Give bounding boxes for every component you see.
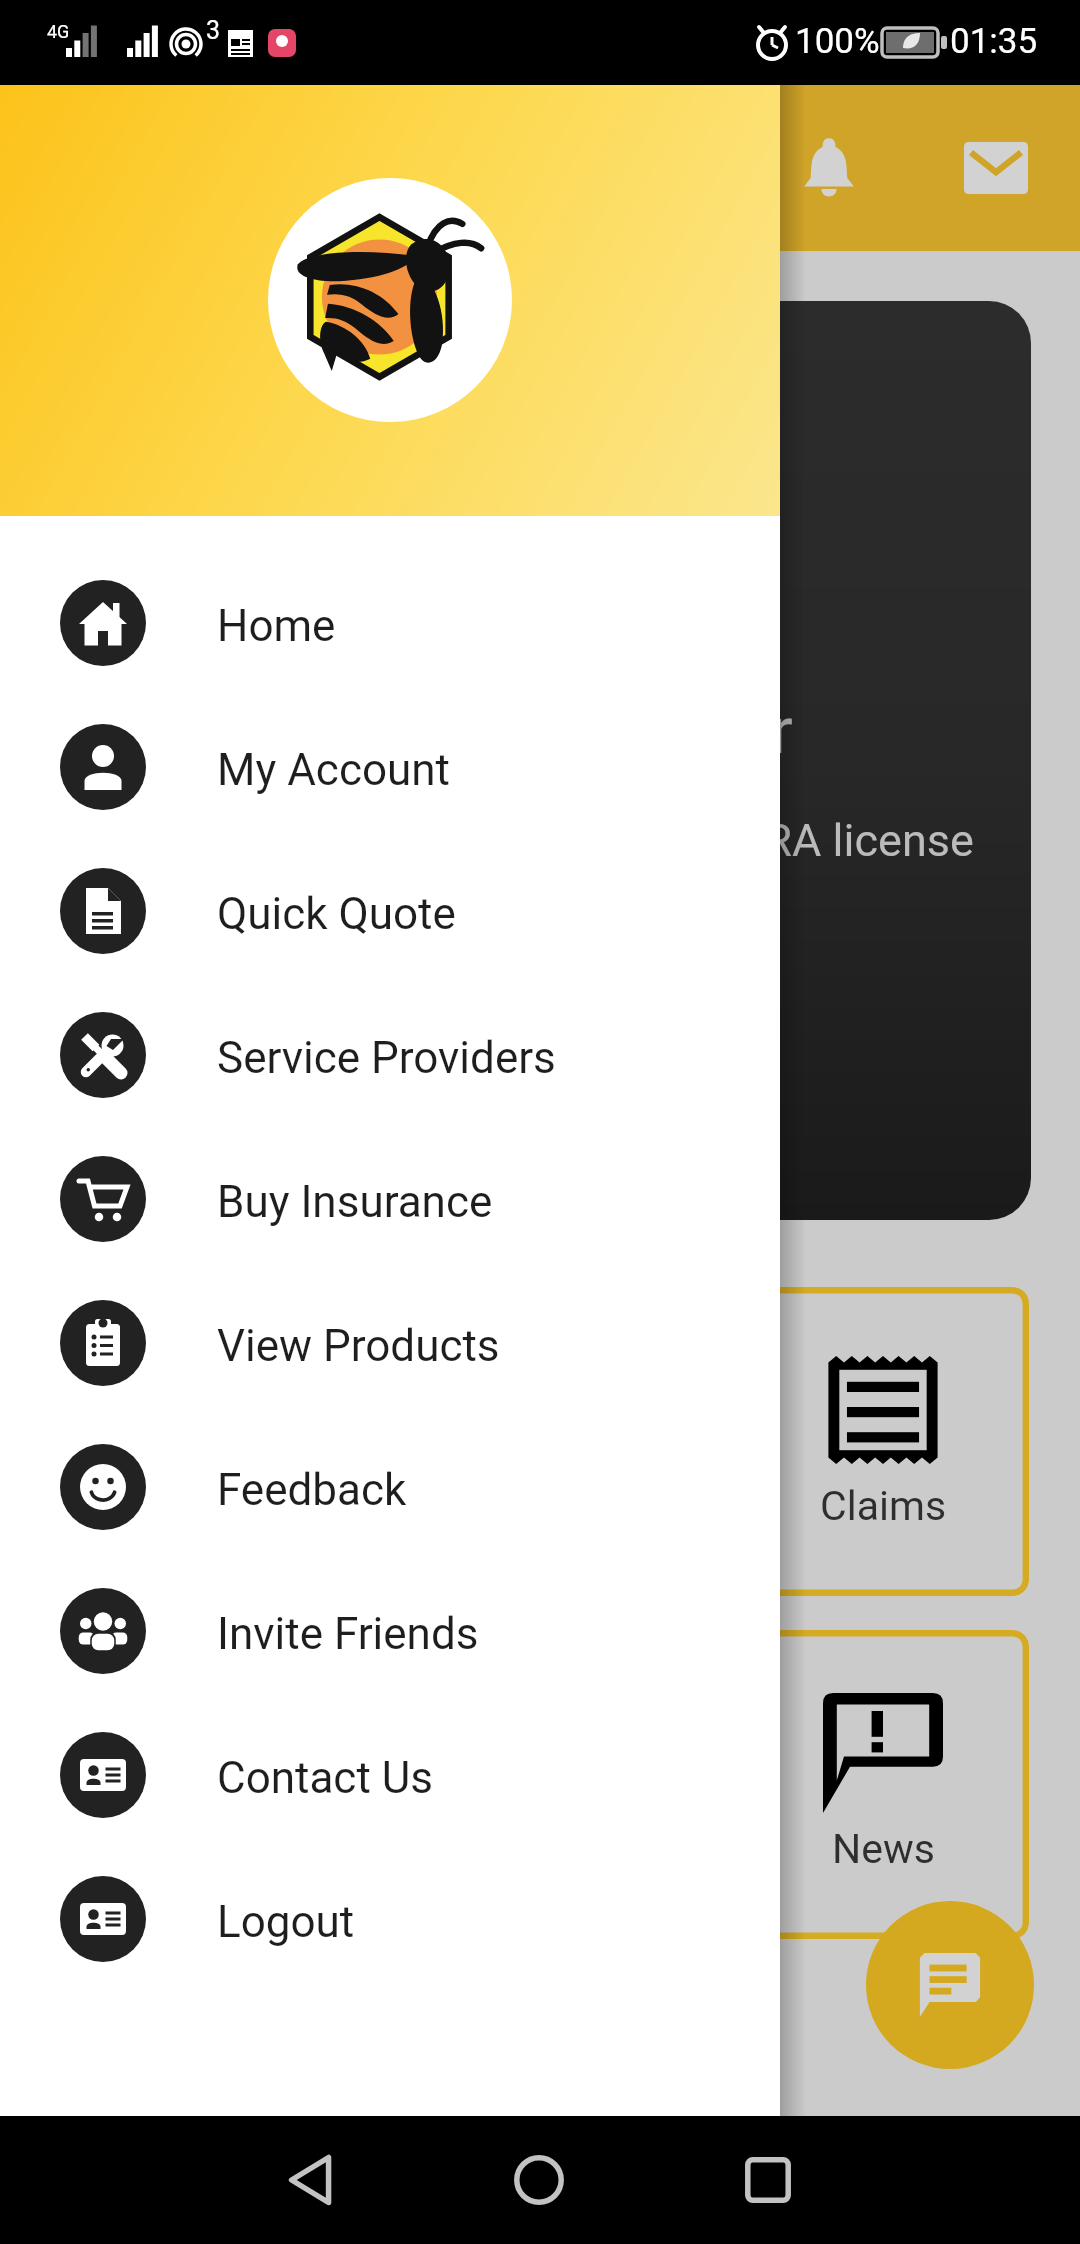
staticText: Logout: [217, 1896, 355, 1948]
staticText: News: [832, 1825, 935, 1873]
button[interactable]: Service Providers: [0, 983, 780, 1127]
button[interactable]: View Products: [0, 1271, 780, 1415]
staticText: View Products: [217, 1320, 500, 1372]
button[interactable]: My Account: [0, 695, 780, 839]
staticText: My Account: [217, 744, 450, 796]
staticText: Invite Friends: [217, 1608, 479, 1660]
button[interactable]: Chat: [866, 1901, 1034, 2069]
button[interactable]: Logout: [0, 1847, 780, 1991]
button[interactable]: Home: [0, 551, 780, 695]
button[interactable]: Help: [394, 1630, 686, 1939]
button[interactable]: Claims: [737, 1287, 1029, 1596]
button[interactable]: Invite Friends: [0, 1559, 780, 1703]
button[interactable]: Home: [479, 2120, 599, 2240]
button[interactable]: Policies: [51, 1287, 343, 1596]
staticText: 3: [206, 16, 221, 45]
button[interactable]: Messages: [936, 108, 1056, 228]
staticText: 100%: [795, 21, 880, 62]
staticText: Quick Quote: [217, 888, 456, 940]
staticText: Service Providers: [217, 1032, 556, 1084]
button[interactable]: Quick Quote: [0, 839, 780, 983]
staticText: Home: [217, 600, 336, 652]
button[interactable]: Back: [250, 2120, 370, 2240]
button[interactable]: Buy Insurance: [0, 1127, 780, 1271]
button[interactable]: Notifications: [769, 108, 889, 228]
staticText: 4G: [47, 21, 70, 42]
staticText: Buy Insurance: [217, 1176, 493, 1228]
button[interactable]: Recents: [708, 2120, 828, 2240]
staticText: Feedback: [217, 1464, 407, 1516]
staticText: 01:35: [950, 21, 1038, 62]
staticText: Renew your IRA license: [509, 814, 974, 867]
button[interactable]: Feedback: [0, 1415, 780, 1559]
button[interactable]: Offers: [51, 1630, 343, 1939]
button[interactable]: Hello, User: [49, 301, 1031, 1220]
staticText: Contact Us: [217, 1752, 433, 1804]
staticText: Claims: [820, 1482, 947, 1530]
button[interactable]: News: [737, 1630, 1029, 1939]
button[interactable]: Quotes: [394, 1287, 686, 1596]
staticText: Hello, User: [471, 694, 793, 769]
staticText: Policies: [125, 1482, 269, 1530]
button[interactable]: Contact Us: [0, 1703, 780, 1847]
